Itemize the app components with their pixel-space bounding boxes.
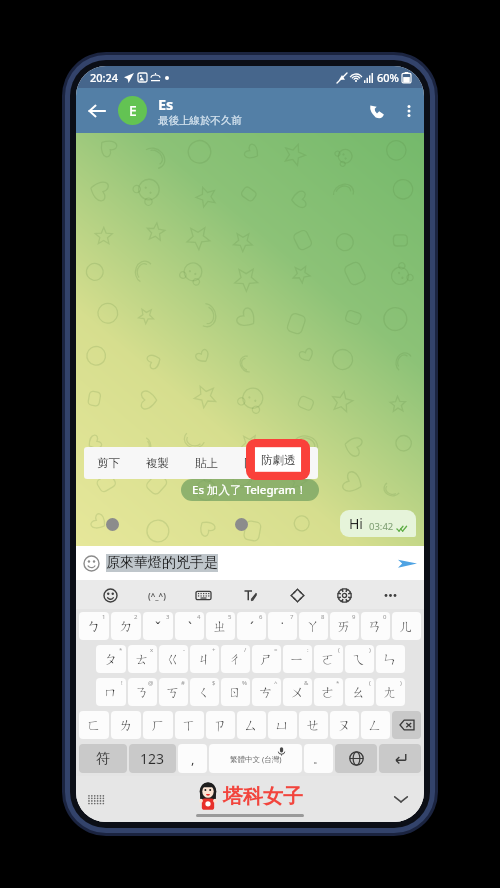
button[interactable]: Resize	[284, 582, 310, 608]
button[interactable]: (	[314, 645, 343, 673]
button[interactable]: ㄦ	[392, 612, 421, 640]
button[interactable]: Backspace	[392, 711, 421, 739]
button[interactable]: Handwriting	[237, 582, 263, 608]
button[interactable]: -	[159, 645, 188, 673]
staticText: ㄜ	[321, 684, 336, 702]
staticText: ㄌ	[119, 717, 134, 735]
staticText: ㄕ	[259, 651, 274, 669]
staticText: ㄔ	[228, 651, 243, 669]
button[interactable]: @	[128, 678, 157, 706]
button[interactable]: )	[376, 678, 405, 706]
button[interactable]: ㄩ	[268, 711, 297, 739]
staticText: ^	[274, 679, 278, 687]
button[interactable]: ㄙ	[237, 711, 266, 739]
button[interactable]: Hide keyboard	[392, 790, 410, 808]
button[interactable]: E	[118, 96, 147, 125]
button[interactable]: 防劇透	[231, 447, 292, 479]
staticText: 最後上線於不久前	[158, 114, 242, 127]
button[interactable]: !	[96, 678, 126, 706]
button[interactable]: 5	[206, 612, 235, 640]
staticText: ㄗ	[213, 717, 228, 735]
staticText: =	[274, 646, 278, 654]
staticText: *	[119, 646, 123, 654]
button[interactable]: 貼上	[182, 447, 231, 479]
staticText: 10月13日	[225, 454, 275, 470]
button[interactable]: ^	[252, 678, 281, 706]
staticText: ㄑ	[197, 684, 212, 702]
button[interactable]: 8	[299, 612, 328, 640]
button[interactable]: (	[345, 678, 374, 706]
button[interactable]: %	[221, 678, 250, 706]
button[interactable]: ㄏ	[143, 711, 173, 739]
button[interactable]: 。	[304, 744, 333, 773]
button[interactable]: 符	[79, 744, 127, 773]
staticText: 貼上	[195, 456, 218, 470]
button[interactable]: Emoji	[97, 582, 123, 608]
staticText: ㄖ	[228, 684, 243, 702]
button[interactable]: Back	[76, 88, 118, 133]
staticText: 3	[166, 613, 170, 621]
staticText: 防劇透	[244, 456, 279, 470]
button[interactable]: 1	[79, 612, 109, 640]
staticText: ㄉ	[119, 618, 134, 636]
staticText: 60%	[377, 70, 399, 85]
staticText: +	[212, 646, 216, 654]
staticText: ㄤ	[383, 684, 398, 702]
button[interactable]: 7	[268, 612, 297, 640]
button[interactable]: ㄡ	[330, 711, 359, 739]
button[interactable]: Call	[360, 88, 394, 133]
staticText: 複製	[146, 456, 169, 470]
button[interactable]: Send	[390, 546, 424, 580]
button[interactable]: ㄥ	[361, 711, 390, 739]
button[interactable]: *	[96, 645, 126, 673]
button[interactable]: +	[190, 645, 219, 673]
button[interactable]: 0	[361, 612, 390, 640]
button[interactable]: More	[292, 447, 318, 479]
button[interactable]: :	[283, 645, 312, 673]
button[interactable]: More options	[394, 88, 424, 133]
button[interactable]: )	[345, 645, 374, 673]
button[interactable]: x	[128, 645, 157, 673]
staticText: 5	[228, 613, 232, 621]
button[interactable]: 3	[143, 612, 173, 640]
button[interactable]: Keyboard layout	[88, 791, 104, 807]
button[interactable]: Hi	[340, 510, 416, 537]
button[interactable]: $	[190, 678, 219, 706]
button[interactable]: ㄒ	[175, 711, 204, 739]
button[interactable]: 繁體中文 (台灣)	[209, 744, 302, 773]
button[interactable]: 2	[111, 612, 141, 640]
button[interactable]: ㄣ	[376, 645, 405, 673]
button[interactable]: ,	[178, 744, 207, 773]
button[interactable]: 複製	[133, 447, 182, 479]
button[interactable]: =	[252, 645, 281, 673]
button[interactable]: Enter	[379, 744, 421, 773]
button[interactable]: More	[377, 582, 403, 608]
button[interactable]: /	[221, 645, 250, 673]
button[interactable]: *	[314, 678, 343, 706]
button[interactable]: Language	[335, 744, 377, 773]
button[interactable]: &	[283, 678, 312, 706]
button[interactable]: ㄝ	[299, 711, 328, 739]
staticText: ㄧ	[290, 651, 305, 669]
button[interactable]: 9	[330, 612, 359, 640]
staticText: (	[338, 646, 340, 654]
button[interactable]: Emoji	[76, 546, 106, 580]
button[interactable]: ㄗ	[206, 711, 235, 739]
staticText: ㄡ	[337, 717, 352, 735]
button[interactable]: 剪下	[84, 447, 133, 479]
staticText: ㄊ	[135, 651, 150, 669]
button[interactable]: #	[159, 678, 188, 706]
button[interactable]: ㄈ	[79, 711, 109, 739]
button[interactable]: Keyboard	[190, 582, 216, 608]
button[interactable]: (^_^)	[144, 582, 170, 608]
button[interactable]: 6	[237, 612, 266, 640]
button[interactable]: 123	[129, 744, 176, 773]
staticText: ㄛ	[321, 651, 336, 669]
button[interactable]: ㄌ	[111, 711, 141, 739]
staticText: 03:42	[369, 520, 394, 533]
button[interactable]: 4	[175, 612, 204, 640]
staticText: (	[369, 679, 371, 687]
staticText: ㄥ	[368, 717, 383, 735]
staticText: ㄦ	[399, 618, 414, 636]
button[interactable]: Settings	[331, 582, 357, 608]
